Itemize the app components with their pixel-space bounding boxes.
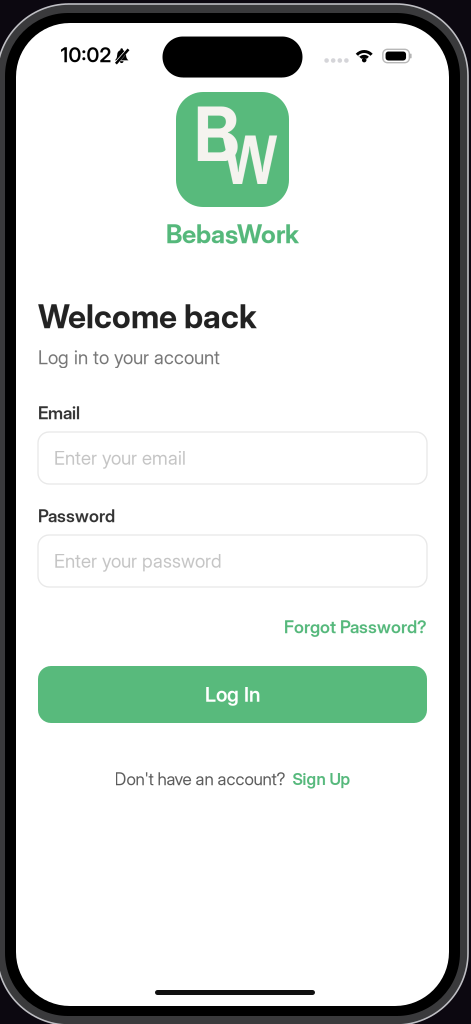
staticText: Log in to your account bbox=[38, 346, 220, 369]
staticText: Password bbox=[38, 505, 115, 526]
staticText: Email bbox=[38, 402, 80, 423]
staticText: 10:02 bbox=[60, 43, 111, 67]
staticText: Enter your password bbox=[54, 550, 222, 572]
button[interactable]: Forgot Password? bbox=[284, 617, 427, 637]
staticText: BebasWork bbox=[166, 219, 299, 249]
staticText: Don't have an account? bbox=[114, 769, 285, 789]
staticText: Enter your email bbox=[54, 447, 186, 469]
button[interactable]: Log In bbox=[38, 666, 427, 723]
button[interactable]: Enter your password bbox=[38, 535, 427, 587]
staticText: B bbox=[193, 79, 240, 186]
button[interactable]: Enter your email bbox=[38, 432, 427, 484]
staticText: Welcome back bbox=[38, 297, 257, 336]
button[interactable]: Sign Up bbox=[292, 769, 350, 789]
staticText: Sign Up bbox=[292, 769, 350, 789]
staticText: Forgot Password? bbox=[284, 616, 427, 637]
staticText: Log In bbox=[205, 682, 260, 707]
staticText: W bbox=[222, 111, 277, 206]
